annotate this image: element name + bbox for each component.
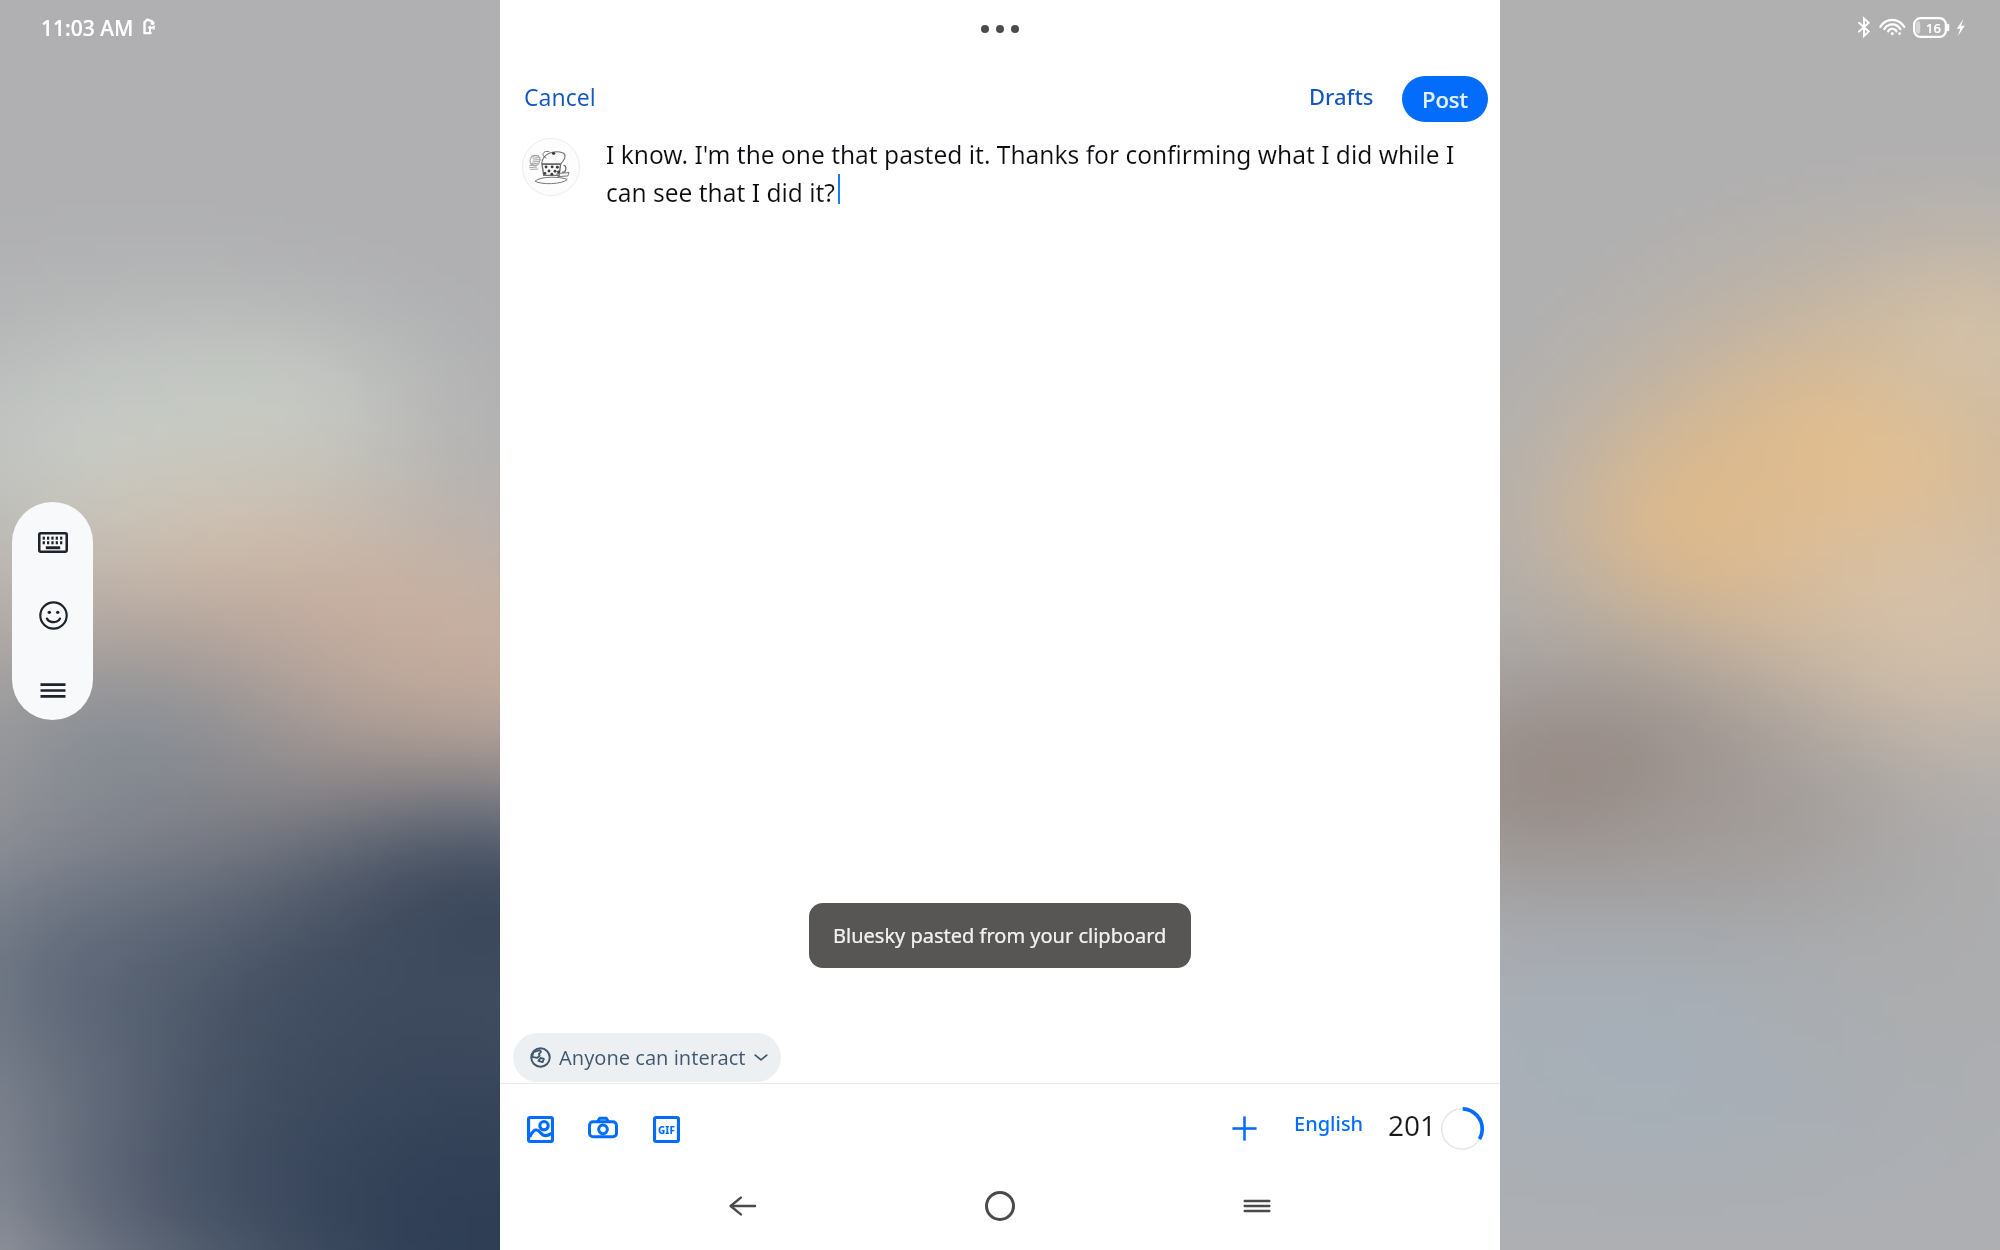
staticText: Anyone can interact: [559, 1044, 746, 1071]
button[interactable]: More actions: [25, 662, 81, 718]
button[interactable]: Anyone can interact: [513, 1033, 781, 1082]
button[interactable]: English: [1290, 1102, 1368, 1145]
button[interactable]: Add more: [1223, 1107, 1265, 1149]
button[interactable]: Emoji: [25, 587, 81, 643]
staticText: Cancel: [524, 81, 596, 112]
button[interactable]: Add image: [517, 1106, 563, 1152]
staticText: 16: [1926, 19, 1941, 37]
button[interactable]: Profile picture: [500, 135, 1500, 209]
staticText: 201: [1388, 1106, 1437, 1144]
staticText: I know. I'm the one that pasted it. Than…: [606, 138, 1478, 209]
button[interactable]: Keyboard: [25, 514, 81, 570]
staticText: Bluesky pasted from your clipboard: [833, 922, 1167, 949]
button[interactable]: More options: [969, 13, 1031, 45]
button[interactable]: Profile picture: [522, 138, 580, 196]
button[interactable]: Camera: [580, 1106, 626, 1152]
button[interactable]: Drafts: [1299, 73, 1384, 119]
button[interactable]: Add GIF: [643, 1106, 689, 1152]
staticText: Post: [1422, 84, 1468, 114]
button[interactable]: Home: [970, 1176, 1030, 1236]
staticText: GIF: [658, 1123, 675, 1137]
button[interactable]: Post: [1402, 76, 1488, 122]
staticText: 11:03 AM: [41, 14, 134, 43]
button[interactable]: Back: [712, 1176, 772, 1236]
staticText: English: [1294, 1110, 1364, 1137]
button[interactable]: Cancel: [522, 73, 598, 120]
staticText: Drafts: [1309, 81, 1374, 111]
button[interactable]: Recent apps: [1227, 1176, 1287, 1236]
